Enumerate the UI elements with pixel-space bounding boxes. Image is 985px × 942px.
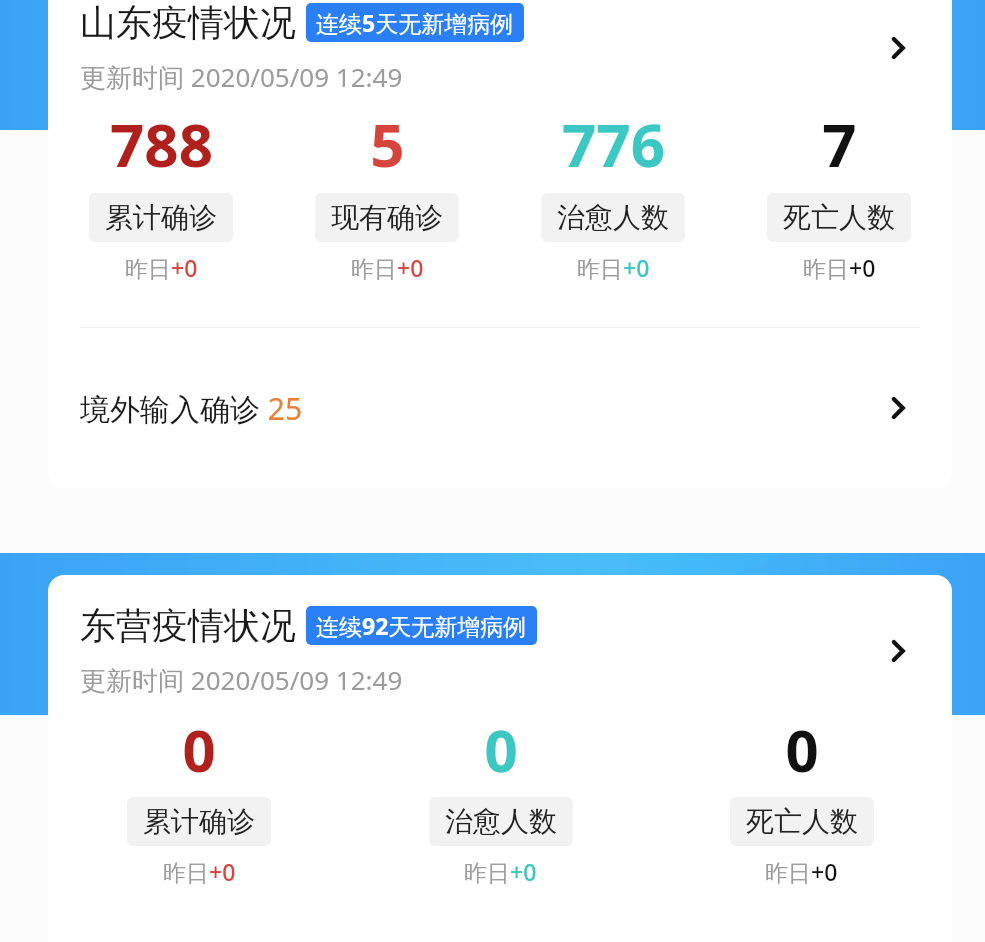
staticText: 治愈人数 — [445, 804, 557, 839]
staticText: 累计确诊 — [143, 804, 255, 839]
button[interactable]: 788 — [48, 103, 274, 283]
button[interactable]: 0 — [48, 710, 350, 887]
staticText: 0 — [785, 710, 819, 789]
button[interactable]: 7 — [726, 103, 952, 283]
staticText: 死亡人数 — [746, 804, 858, 839]
staticText: 昨日+0 — [803, 252, 876, 283]
staticText: 昨日+0 — [577, 252, 650, 283]
staticText: 治愈人数 — [557, 200, 669, 235]
staticText: 5 — [370, 103, 405, 185]
button[interactable]: 山东疫情状况 — [48, 0, 952, 95]
staticText: 788 — [110, 103, 213, 185]
staticText: 现有确诊 — [331, 200, 443, 235]
staticText: 更新时间 2020/05/09 12:49 — [80, 59, 403, 95]
button[interactable]: 查看详情 — [876, 386, 920, 430]
staticText: 死亡人数 — [783, 200, 895, 235]
staticText: 昨日+0 — [765, 856, 838, 887]
staticText: 昨日+0 — [464, 856, 537, 887]
staticText: 更新时间 2020/05/09 12:49 — [80, 662, 403, 698]
button[interactable]: 0 — [350, 710, 651, 887]
staticText: 东营疫情状况 — [80, 603, 296, 648]
button[interactable]: 东营疫情状况 — [48, 603, 952, 698]
staticText: 境外输入确诊 25 — [80, 388, 303, 429]
button[interactable]: 查看详情 — [876, 629, 920, 673]
staticText: 昨日+0 — [163, 856, 236, 887]
staticText: 7 — [822, 103, 857, 185]
staticText: 累计确诊 — [105, 200, 217, 235]
staticText: 0 — [484, 710, 518, 789]
staticText: 776 — [562, 103, 665, 185]
button[interactable]: 0 — [651, 710, 952, 887]
button[interactable]: 查看详情 — [876, 26, 920, 70]
button[interactable]: 境外输入确诊 25 — [48, 328, 952, 488]
staticText: 昨日+0 — [125, 252, 198, 283]
staticText: 连续92天无新增病例 — [316, 610, 527, 641]
button[interactable]: 5 — [274, 103, 500, 283]
staticText: 昨日+0 — [351, 252, 424, 283]
button[interactable]: 776 — [500, 103, 726, 283]
staticText: 山东疫情状况 — [80, 0, 296, 45]
staticText: 0 — [182, 710, 216, 789]
staticText: 连续5天无新增病例 — [316, 7, 514, 38]
